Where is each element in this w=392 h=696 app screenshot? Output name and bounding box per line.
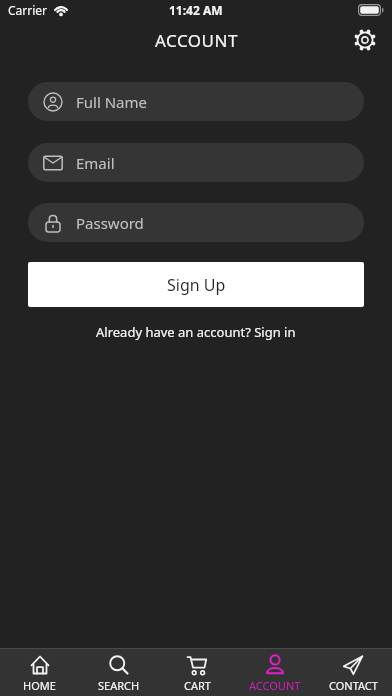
staticText: 11:42 AM: [169, 2, 223, 18]
staticText: ACCOUNT: [155, 29, 238, 52]
button[interactable]: Already have an account? Sign in: [28, 323, 364, 341]
button[interactable]: ACCOUNT: [236, 649, 314, 696]
button[interactable]: Email: [28, 143, 364, 182]
button[interactable]: HOME: [0, 649, 79, 696]
button[interactable]: CART: [158, 649, 236, 696]
button[interactable]: CONTACT: [314, 649, 392, 696]
button[interactable]: Full Name: [28, 82, 364, 121]
button[interactable]: [351, 26, 379, 54]
staticText: Sign Up: [167, 274, 226, 296]
staticText: HOME: [23, 678, 56, 693]
button[interactable]: Sign Up: [28, 262, 364, 307]
staticText: SEARCH: [98, 678, 140, 693]
staticText: Full Name: [76, 92, 147, 112]
button[interactable]: Password: [28, 203, 364, 242]
staticText: ACCOUNT: [249, 678, 301, 693]
staticText: CART: [184, 678, 211, 693]
staticText: Carrier: [8, 2, 48, 18]
staticText: CONTACT: [329, 678, 378, 693]
staticText: Email: [76, 153, 115, 173]
button[interactable]: SEARCH: [79, 649, 158, 696]
staticText: Already have an account? Sign in: [96, 323, 296, 341]
staticText: Password: [76, 213, 144, 233]
